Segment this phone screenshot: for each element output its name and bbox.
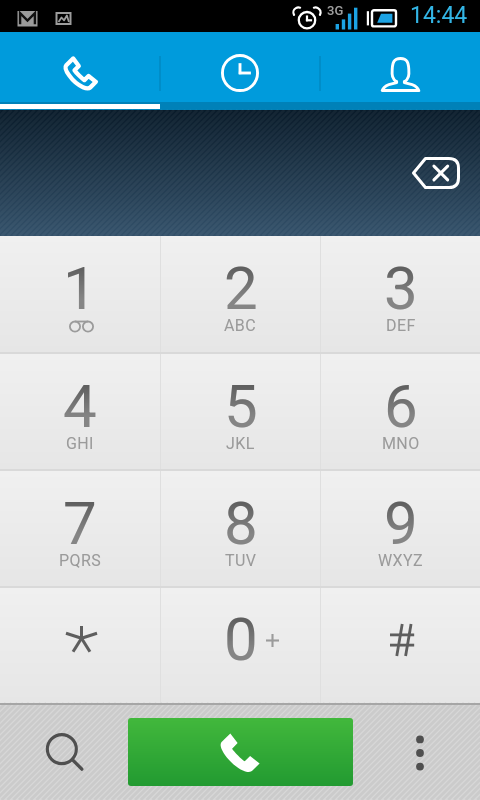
- staticText: 8: [224, 488, 258, 558]
- staticText: 9: [384, 488, 418, 558]
- button[interactable]: 3: [321, 236, 480, 352]
- button[interactable]: [0, 588, 160, 703]
- button[interactable]: 0: [161, 588, 320, 703]
- staticText: 6: [384, 371, 418, 441]
- staticText: 14:44: [410, 2, 468, 29]
- staticText: 3G: [327, 3, 344, 18]
- staticText: 0: [224, 604, 258, 674]
- staticText: WXYZ: [378, 551, 424, 570]
- staticText: 5: [224, 371, 258, 441]
- button[interactable]: 8: [161, 471, 320, 586]
- button[interactable]: 2: [161, 236, 320, 352]
- button[interactable]: 7: [0, 471, 160, 586]
- button[interactable]: Dial pad: [0, 32, 160, 102]
- button[interactable]: 5: [161, 354, 320, 469]
- staticText: 1: [63, 253, 97, 323]
- button[interactable]: 1: [0, 236, 160, 352]
- staticText: TUV: [225, 551, 257, 570]
- staticText: MNO: [382, 434, 420, 453]
- staticText: 4: [63, 371, 97, 441]
- staticText: PQRS: [59, 551, 102, 570]
- button[interactable]: Call history: [160, 32, 320, 102]
- button[interactable]: Contacts: [320, 32, 480, 102]
- button[interactable]: More options: [353, 703, 480, 800]
- staticText: ABC: [224, 316, 257, 335]
- button[interactable]: Call: [128, 718, 353, 786]
- button[interactable]: 6: [321, 354, 480, 469]
- staticText: 3: [384, 253, 418, 323]
- button[interactable]: [321, 588, 480, 703]
- button[interactable]: 9: [321, 471, 480, 586]
- button[interactable]: 4: [0, 354, 160, 469]
- button[interactable]: Search: [0, 703, 128, 800]
- staticText: JKL: [226, 434, 255, 453]
- button[interactable]: Backspace: [404, 147, 468, 199]
- staticText: 7: [63, 488, 97, 558]
- staticText: DEF: [386, 316, 416, 335]
- staticText: GHI: [66, 434, 94, 453]
- staticText: 2: [224, 253, 258, 323]
